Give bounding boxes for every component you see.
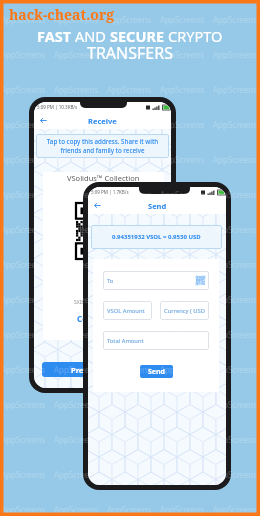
staticText: AppScreens [213, 14, 258, 25]
staticText: Send [148, 367, 166, 377]
staticText: TRANSFERS [87, 42, 173, 64]
staticText: AppScreens [160, 469, 205, 480]
button[interactable]: VSOL Amount [103, 301, 152, 320]
staticText: AppScreens [160, 434, 205, 445]
staticText: AppScreens [54, 364, 99, 375]
staticText: AppScreens [1, 119, 46, 130]
staticText: AppScreens [1, 14, 46, 25]
staticText: AppScreens [160, 294, 205, 305]
staticText: AppScreens [213, 154, 258, 165]
staticText: 0.94351932 VSOL = 0.9530 USD [112, 233, 201, 241]
staticText: Send [148, 201, 167, 211]
staticText: AppScreens [213, 504, 258, 515]
staticText: AppScreens [213, 224, 258, 235]
staticText: AppScreens [213, 259, 258, 270]
staticText: AppScreens [107, 189, 152, 200]
staticText: AppScreens [107, 14, 152, 25]
staticText: Tap to copy this address. Share it with … [41, 137, 164, 155]
staticText: VSolidus™ Collection [67, 173, 140, 183]
button[interactable]: Send [140, 365, 173, 378]
button[interactable]: To [103, 271, 209, 290]
staticText: AppScreens [160, 399, 205, 410]
staticText: 5:09 PM | 10.3KB/s [37, 104, 78, 110]
staticText: VSolidus™ [85, 285, 123, 295]
staticText: AppScreens [1, 329, 46, 340]
staticText: AppScreens [54, 294, 99, 305]
staticText: AppScreens [1, 504, 46, 515]
staticText: AppScreens [107, 294, 152, 305]
staticText: AppScreens [160, 224, 205, 235]
staticText: AppScreens [160, 84, 205, 95]
staticText: AppScreens [213, 399, 258, 410]
staticText: AppScreens [213, 364, 258, 375]
staticText: VSOL Amount [107, 307, 145, 315]
button[interactable]: Previous Address [42, 362, 164, 377]
staticText: AppScreens [107, 49, 152, 60]
staticText: AppScreens [213, 469, 258, 480]
staticText: AND [75, 26, 110, 46]
staticText: Receive [88, 116, 117, 126]
staticText: AppScreens [1, 49, 46, 60]
staticText: AppScreens [213, 329, 258, 340]
staticText: Previous Address [71, 365, 135, 375]
button[interactable]: Copy Address [73, 312, 135, 325]
staticText: AppScreens [213, 84, 258, 95]
staticText: AppScreens [107, 364, 152, 375]
staticText: Copy Address [77, 313, 131, 324]
staticText: AppScreens [54, 14, 99, 25]
staticText: AppScreens [1, 259, 46, 270]
staticText: AppScreens [54, 259, 99, 270]
button[interactable]: Back [91, 199, 104, 212]
staticText: AppScreens [160, 154, 205, 165]
staticText: AppScreens [160, 119, 205, 130]
staticText: AppScreens [160, 49, 205, 60]
staticText: AppScreens [54, 49, 99, 60]
staticText: AppScreens [54, 469, 99, 480]
staticText: AppScreens [213, 189, 258, 200]
button[interactable]: Back [37, 114, 50, 127]
staticText: AppScreens [107, 154, 152, 165]
staticText: CRYPTO [168, 26, 223, 46]
staticText: AppScreens [1, 224, 46, 235]
staticText: AppScreens [107, 84, 152, 95]
button[interactable]: Total Amount [103, 331, 209, 350]
staticText: SXDf9Kau3Uy8Ez2xWRbp [74, 299, 134, 306]
staticText: AppScreens [1, 84, 46, 95]
staticText: AppScreens [160, 504, 205, 515]
staticText: AppScreens [213, 119, 258, 130]
staticText: AppScreens [54, 329, 99, 340]
staticText: Currency ( USD ) [164, 307, 205, 315]
staticText: AppScreens [54, 434, 99, 445]
staticText: AppScreens [1, 434, 46, 445]
staticText: AppScreens [160, 14, 205, 25]
staticText: AppScreens [1, 469, 46, 480]
staticText: AppScreens [1, 399, 46, 410]
staticText: AppScreens [54, 504, 99, 515]
staticText: 5:09 PM | 1.7KB/s [91, 189, 129, 195]
button[interactable]: Currency ( USD ) [160, 301, 209, 320]
staticText: FAST [37, 26, 75, 46]
staticText: AppScreens [54, 119, 99, 130]
staticText: AppScreens [107, 469, 152, 480]
staticText: AppScreens [107, 119, 152, 130]
staticText: AppScreens [160, 189, 205, 200]
staticText: SECURE [110, 26, 168, 46]
staticText: AppScreens [213, 434, 258, 445]
staticText: AppScreens [107, 329, 152, 340]
staticText: AppScreens [1, 154, 46, 165]
staticText: AppScreens [107, 504, 152, 515]
staticText: AppScreens [213, 49, 258, 60]
staticText: To [107, 277, 114, 285]
staticText: AppScreens [160, 364, 205, 375]
staticText: AppScreens [54, 189, 99, 200]
staticText: AppScreens [1, 294, 46, 305]
staticText: AppScreens [54, 224, 99, 235]
staticText: AppScreens [213, 294, 258, 305]
staticText: AppScreens [107, 399, 152, 410]
staticText: AppScreens [1, 189, 46, 200]
staticText: hack-cheat.org [9, 5, 115, 24]
staticText: AppScreens [107, 434, 152, 445]
staticText: AppScreens [54, 399, 99, 410]
staticText: AppScreens [54, 154, 99, 165]
